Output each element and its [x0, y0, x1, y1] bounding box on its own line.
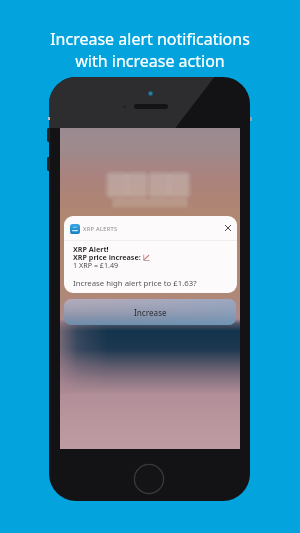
staticText: Increase high alert price to £1.63?	[73, 278, 197, 289]
staticText: Increase alert notifications	[50, 28, 250, 50]
button[interactable]: Home	[133, 463, 165, 495]
staticText: with increase action	[75, 50, 225, 72]
button[interactable]: XRP ALERTS	[64, 216, 237, 293]
staticText: XRP Alert!	[73, 244, 109, 254]
staticText: XRP price increase:	[73, 252, 141, 262]
button[interactable]: Dismiss notification	[222, 222, 234, 234]
staticText: 1 XRP = £1.49	[73, 260, 119, 270]
staticText: Increase	[134, 307, 167, 318]
staticText: XRP ALERTS	[83, 225, 118, 233]
button[interactable]: Increase	[64, 299, 236, 325]
